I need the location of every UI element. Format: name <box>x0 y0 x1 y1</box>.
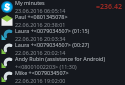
button[interactable]: Mike +<0079034507> <box>0 70 125 84</box>
button[interactable]: Laura +<0079034507> (00:27) <box>0 42 125 56</box>
staticText: +<08001002203> (11:30) <box>15 63 77 70</box>
staticText: Andy Rubin (assistance for Android) <box>15 55 106 62</box>
staticText: Paul +<0801345078> <box>15 13 68 20</box>
staticText: My minutes <box>15 0 45 6</box>
staticText: 22.06.2016 20:03:34 <box>15 35 66 42</box>
staticText: 22.06.2016 19:02:00 <box>15 77 66 84</box>
button[interactable]: Andy Rubin (assistance for Android) <box>0 56 125 70</box>
staticText: =236.42 <box>96 2 122 12</box>
staticText: 22.06.2016 20:38:01 <box>15 21 66 28</box>
staticText: Mike +<0079034507> <box>15 69 69 76</box>
staticText: 22.06.2016 20:02:14 <box>15 49 66 56</box>
button[interactable]: Laura +<0079034507> (01:15) <box>0 28 125 42</box>
staticText: Laura +<0079034507> (00:27) <box>15 41 90 48</box>
button[interactable]: Paul +<0801345078> <box>0 14 125 28</box>
button[interactable]: My minutes <box>0 0 125 14</box>
staticText: 23.06.2016 06:05:14 <box>15 7 66 14</box>
staticText: Laura +<0079034507> (01:15) <box>15 27 90 34</box>
